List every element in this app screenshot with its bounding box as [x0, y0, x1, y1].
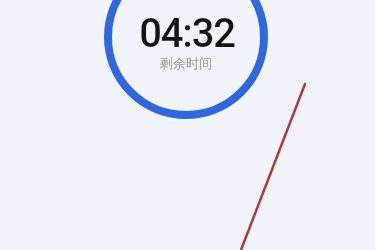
- staticText: 04:32: [139, 10, 235, 57]
- button[interactable]: 剩余时间: [106, 55, 266, 71]
- staticText: 剩余时间: [160, 55, 212, 71]
